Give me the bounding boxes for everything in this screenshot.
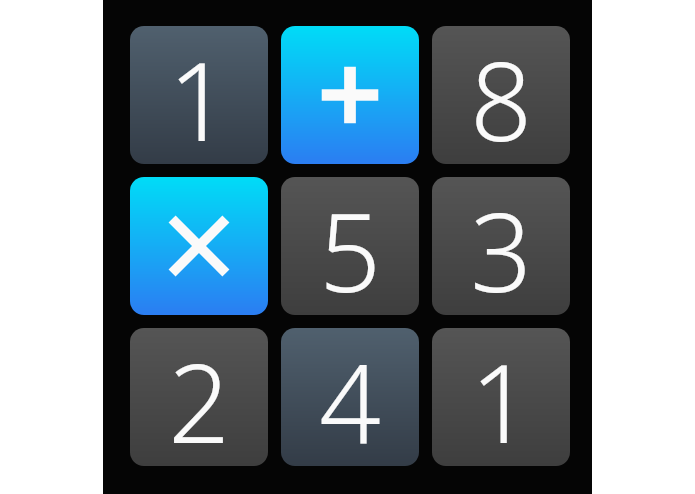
staticText: 2 (168, 328, 230, 466)
staticText: 4 (319, 328, 381, 466)
button[interactable]: Multiply operator (130, 177, 268, 315)
button[interactable]: 5 (281, 177, 419, 315)
button[interactable]: 3 (432, 177, 570, 315)
staticText: 1 (168, 26, 230, 164)
staticText: 8 (470, 26, 532, 164)
button[interactable]: 2 (130, 328, 268, 466)
staticText: 1 (470, 328, 532, 466)
button[interactable]: Plus operator (281, 26, 419, 164)
staticText: 3 (470, 177, 532, 315)
button[interactable]: 1 (130, 26, 268, 164)
button[interactable]: 4 (281, 328, 419, 466)
button[interactable]: 1 (432, 328, 570, 466)
button[interactable]: 8 (432, 26, 570, 164)
staticText: 5 (319, 177, 381, 315)
